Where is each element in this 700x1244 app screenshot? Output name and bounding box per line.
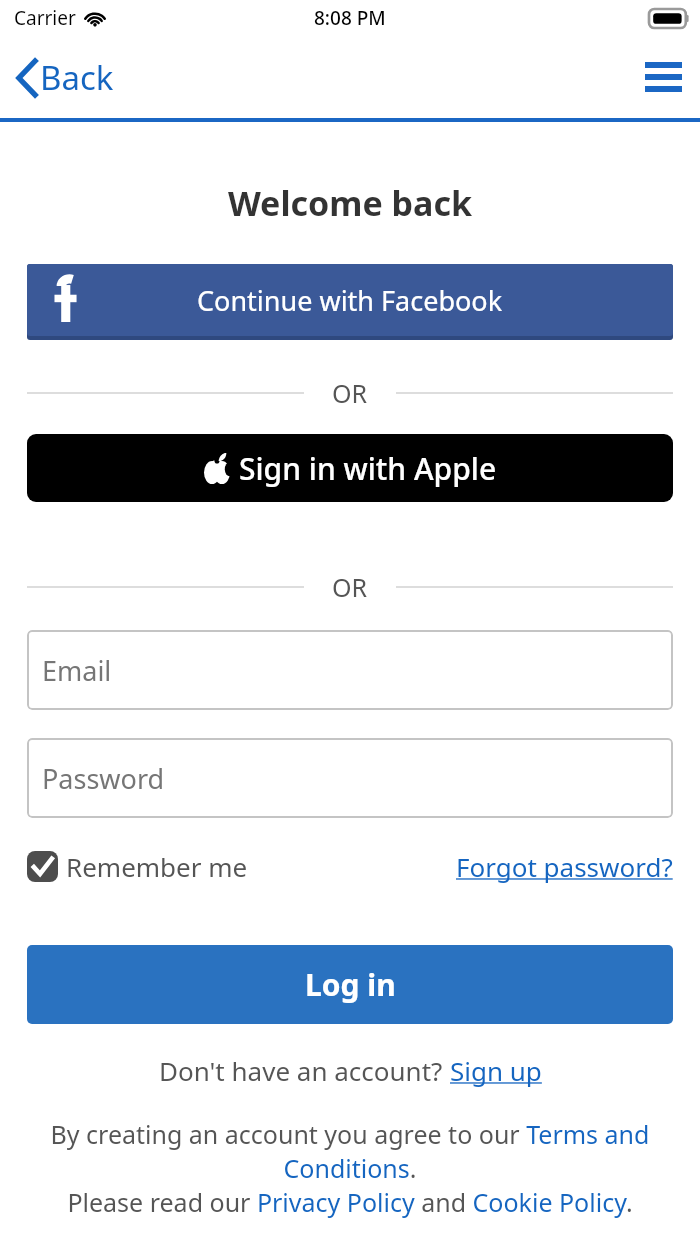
button[interactable]: Email [27, 630, 673, 710]
button[interactable]: By creating an account you agree to our … [27, 1117, 673, 1219]
button[interactable]: Sign up [450, 1053, 542, 1088]
button[interactable]: Password [27, 738, 673, 818]
staticText: Email [42, 652, 112, 689]
button[interactable]: Sign in with Apple [27, 434, 673, 502]
button[interactable]: Forgot password? [456, 849, 673, 884]
staticText: OR [332, 376, 368, 410]
staticText: Password [42, 760, 165, 797]
staticText: Sign in with Apple [239, 448, 497, 489]
button[interactable]: Continue with Facebook [27, 264, 673, 343]
button[interactable]: Remember me [27, 849, 248, 884]
staticText: Back [40, 55, 114, 100]
staticText: Log in [305, 964, 396, 1005]
staticText: Continue with Facebook [197, 282, 503, 319]
button[interactable]: Log in [27, 945, 673, 1024]
staticText: Welcome back [27, 180, 673, 226]
staticText: 8:08 PM [314, 5, 386, 31]
staticText: Forgot password? [456, 849, 673, 884]
button[interactable]: Menu [627, 46, 700, 108]
button[interactable]: Back [0, 47, 128, 108]
staticText: Sign up [450, 1053, 542, 1088]
staticText: Carrier [14, 5, 76, 31]
staticText: Remember me [66, 849, 248, 884]
staticText: OR [332, 570, 368, 604]
staticText: Don't have an account? [159, 1053, 450, 1088]
